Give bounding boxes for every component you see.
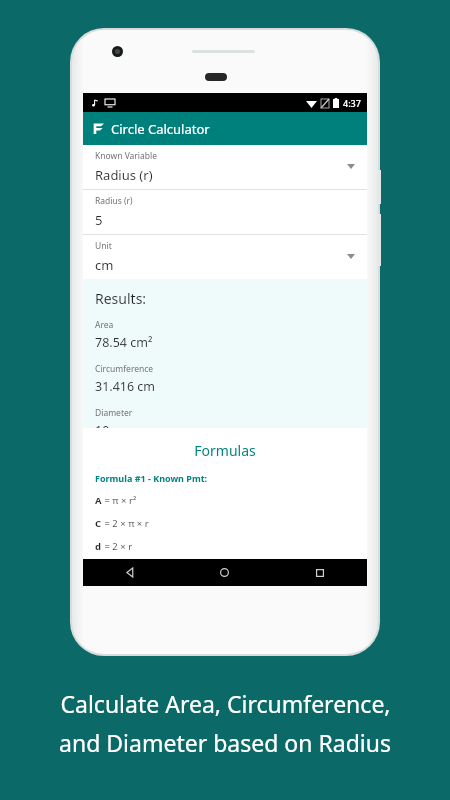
staticText: 31.416 cm: [95, 378, 156, 395]
button[interactable]: Radius (r): [83, 190, 367, 234]
staticText: = 2 × π × r: [102, 517, 149, 530]
staticText: 4:37: [343, 97, 361, 109]
staticText: C: [95, 517, 102, 530]
staticText: cm: [95, 256, 114, 274]
staticText: Radius (r): [95, 166, 153, 184]
staticText: A: [95, 494, 102, 507]
staticText: 5: [95, 211, 103, 229]
button[interactable]: Known Variable: [83, 145, 367, 189]
staticText: Known Variable: [95, 150, 158, 162]
button[interactable]: Back: [83, 559, 177, 586]
staticText: Circle Calculator: [111, 120, 210, 138]
button[interactable]: Unit: [83, 235, 367, 279]
staticText: Radius (r): [95, 195, 133, 207]
staticText: Calculate Area, Circumference,: [60, 688, 391, 719]
button[interactable]: Recent apps: [272, 559, 367, 586]
staticText: Unit: [95, 240, 112, 252]
staticText: 78.54 cm²: [95, 334, 153, 351]
staticText: Diameter: [95, 407, 133, 419]
button[interactable]: Home: [177, 559, 272, 586]
other: App icon: [93, 123, 104, 134]
staticText: Area: [95, 319, 114, 331]
staticText: = π × r²: [102, 494, 137, 507]
staticText: Circumference: [95, 363, 154, 375]
staticText: Formula #1 - Known Pmt:: [95, 472, 208, 484]
staticText: Results:: [95, 289, 147, 308]
staticText: = 2 × r: [102, 540, 133, 553]
staticText: d: [95, 540, 102, 553]
staticText: and Diameter based on Radius: [59, 727, 391, 758]
staticText: 10 cm: [95, 422, 131, 428]
button[interactable]: App icon: [83, 112, 367, 145]
staticText: Formulas: [83, 441, 367, 460]
